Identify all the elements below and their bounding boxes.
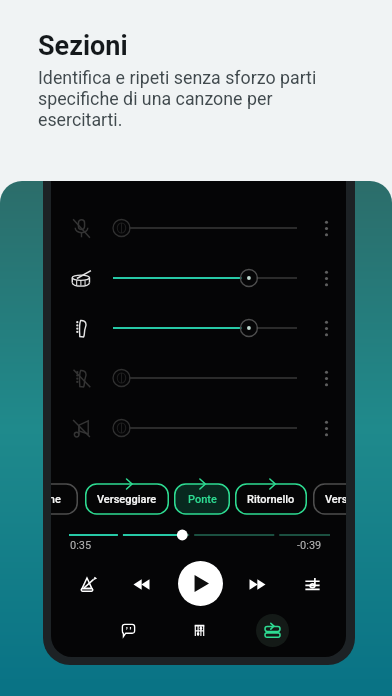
staticText: 0:35 [70,539,92,552]
staticText: Sezioni [38,30,128,62]
button[interactable]: Track options [51,403,346,453]
button[interactable]: Verseggiare [85,484,169,514]
button[interactable]: Verseggiare [313,484,346,514]
button[interactable]: Track options [51,353,346,403]
button[interactable]: Play [178,561,223,606]
button[interactable]: Fast forward [239,560,275,608]
staticText: Ponte [188,493,217,506]
button[interactable]: Chords [177,608,221,652]
button[interactable]: Introduzione [51,484,78,514]
button[interactable]: Track options [307,403,346,453]
button[interactable]: Sections [250,608,294,652]
staticText: Identifica e ripeti senza sforzo parti s… [38,67,333,130]
button[interactable]: Rewind [123,560,159,608]
button[interactable]: Tempo and pitch [294,560,330,608]
staticText: Verseggiare [325,493,346,506]
staticText: Verseggiare [97,493,157,506]
button[interactable]: Ritornello [235,484,307,514]
staticText: -0:39 [297,539,322,552]
button[interactable]: Lyrics [106,608,150,652]
staticText: Introduzione [51,493,61,506]
button[interactable]: Track options [307,303,346,353]
button[interactable]: Track options [51,253,346,303]
button[interactable]: Track options [307,353,346,403]
button[interactable]: Ponte [174,484,230,514]
button[interactable]: Track options [51,303,346,353]
button[interactable]: Track options [307,253,346,303]
button[interactable]: Metronome [69,560,105,608]
staticText: Ritornello [247,493,295,506]
button[interactable]: Track options [307,203,346,253]
button[interactable]: Track options [51,203,346,253]
